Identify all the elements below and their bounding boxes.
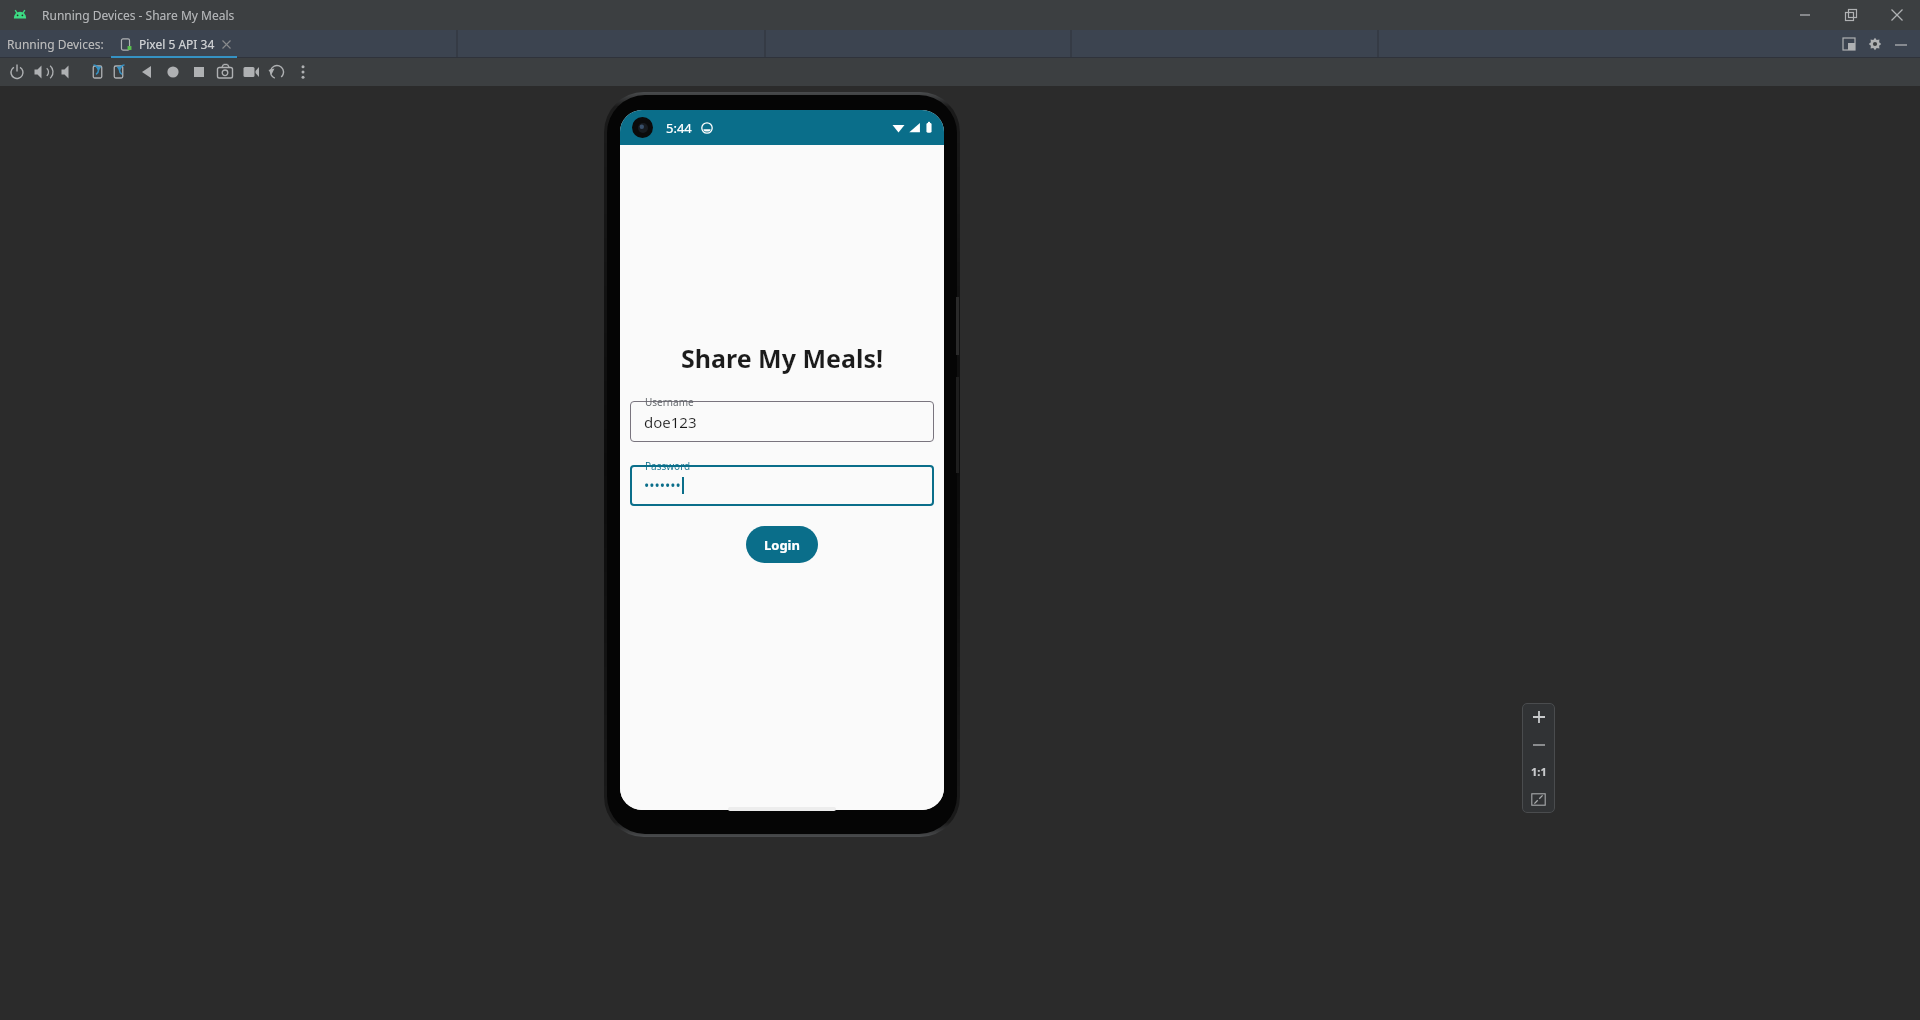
button[interactable]: Volume down bbox=[56, 59, 82, 85]
staticText: ••••••• bbox=[644, 476, 681, 495]
button[interactable]: Minimize bbox=[1782, 0, 1828, 30]
button[interactable]: Zoom in bbox=[1522, 703, 1555, 731]
staticText: Password bbox=[645, 459, 691, 473]
button[interactable]: Zoom to fit bbox=[1522, 785, 1555, 813]
button[interactable]: Overview bbox=[186, 59, 212, 85]
button[interactable]: Home bbox=[160, 59, 186, 85]
button[interactable]: Layout bbox=[1836, 31, 1862, 57]
button[interactable]: Hide bbox=[1888, 31, 1914, 57]
button[interactable]: Volume up bbox=[30, 59, 56, 85]
staticText: Username bbox=[645, 395, 694, 409]
button[interactable]: Zoom to actual size bbox=[1522, 758, 1555, 785]
button[interactable]: Pixel 5 API 34 bbox=[110, 30, 238, 58]
button[interactable]: Username bbox=[630, 395, 934, 442]
button[interactable]: Settings bbox=[1862, 31, 1888, 57]
button[interactable]: Login bbox=[746, 526, 818, 563]
staticText: 1:1 bbox=[1531, 764, 1547, 779]
button[interactable]: Restore bbox=[1828, 0, 1874, 30]
button[interactable]: Rotate right bbox=[108, 59, 134, 85]
button[interactable]: Screenshot bbox=[212, 59, 238, 85]
staticText: doe123 bbox=[644, 412, 697, 432]
button[interactable]: Zoom out bbox=[1522, 731, 1555, 758]
staticText: Pixel 5 API 34 bbox=[139, 36, 215, 52]
button[interactable]: More bbox=[290, 59, 316, 85]
staticText: 5:44 bbox=[666, 119, 692, 137]
staticText: Running Devices - Share My Meals bbox=[42, 7, 235, 23]
button[interactable]: Back bbox=[134, 59, 160, 85]
button[interactable]: History bbox=[264, 59, 290, 85]
button[interactable]: Password bbox=[630, 459, 934, 506]
staticText: Login bbox=[764, 536, 800, 554]
button[interactable]: Power bbox=[4, 59, 30, 85]
staticText: Running Devices: bbox=[7, 36, 104, 52]
staticText: Share My Meals! bbox=[620, 341, 944, 375]
button[interactable]: Record bbox=[238, 59, 264, 85]
button[interactable]: Close bbox=[1874, 0, 1920, 30]
button[interactable]: Rotate left bbox=[82, 59, 108, 85]
